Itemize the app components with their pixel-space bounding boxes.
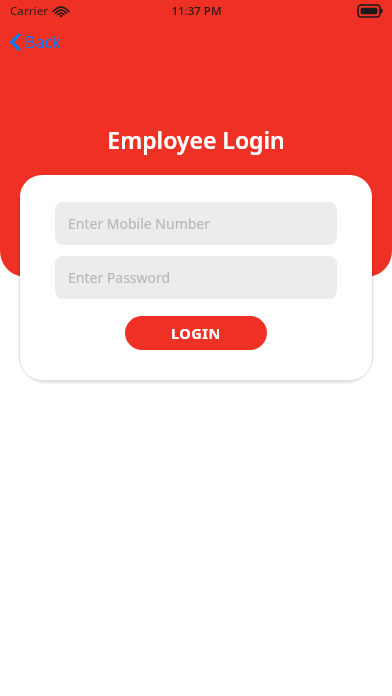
staticText: Enter Mobile Number xyxy=(68,214,211,233)
staticText: Enter Password xyxy=(68,268,171,287)
button[interactable]: Enter Password xyxy=(55,256,337,299)
button[interactable]: Back xyxy=(0,28,71,56)
button[interactable]: Enter Mobile Number xyxy=(55,202,337,245)
staticText: LOGIN xyxy=(171,323,221,343)
other: Battery full xyxy=(358,5,383,17)
staticText: 11:37 PM xyxy=(171,3,222,19)
staticText: Employee Login xyxy=(0,124,392,155)
staticText: Back xyxy=(25,31,61,53)
button[interactable]: LOGIN xyxy=(125,316,267,350)
other: Wi-Fi signal xyxy=(54,6,68,17)
staticText: Carrier xyxy=(10,3,49,19)
